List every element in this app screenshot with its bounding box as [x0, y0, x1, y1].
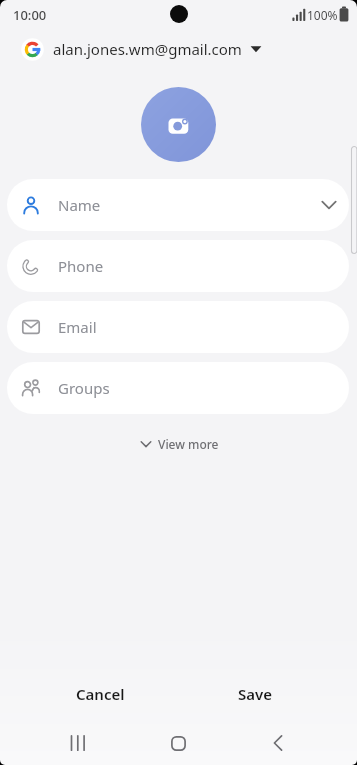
button[interactable] [141, 87, 216, 162]
button[interactable] [56, 724, 100, 762]
button[interactable]: Cancel [55, 677, 145, 711]
button[interactable]: Phone [7, 240, 349, 292]
button[interactable]: alan.jones.wm@gmail.com [21, 36, 262, 62]
staticText: Name [58, 195, 101, 215]
staticText: Groups [58, 378, 110, 398]
staticText: View more [158, 436, 219, 452]
staticText: 10:00 [13, 6, 47, 23]
staticText: 100% [307, 7, 338, 23]
staticText: Phone [58, 256, 104, 276]
button[interactable]: Email [7, 301, 349, 353]
staticText: alan.jones.wm@gmail.com [53, 39, 242, 59]
staticText: Cancel [76, 684, 125, 704]
button[interactable]: Groups [7, 362, 349, 414]
button[interactable] [156, 724, 200, 762]
button[interactable]: Name [7, 179, 349, 231]
staticText: Email [58, 317, 97, 337]
button[interactable]: Save [215, 677, 295, 711]
button[interactable]: View more [128, 431, 230, 456]
staticText: Save [238, 684, 273, 704]
button[interactable] [256, 724, 300, 762]
